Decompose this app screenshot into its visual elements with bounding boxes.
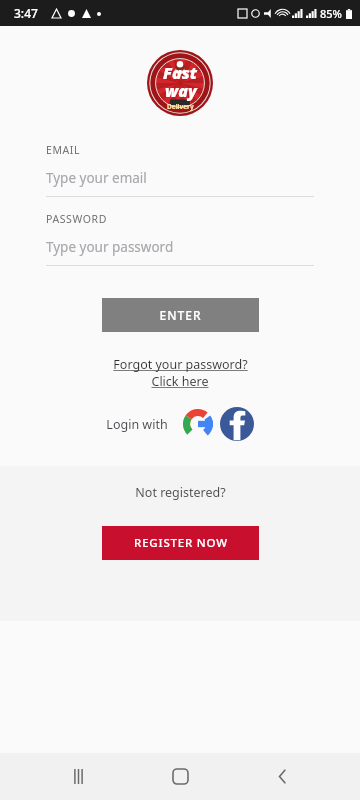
staticText: Not registered? <box>135 484 226 501</box>
staticText: REGISTER NOW <box>134 535 228 551</box>
staticText: Click here <box>151 373 209 390</box>
staticText: ENTER <box>159 307 202 323</box>
staticText: Fast <box>163 62 198 84</box>
staticText: Type your email <box>46 169 147 187</box>
staticText: Login with <box>106 416 168 433</box>
staticText: Forgot your password? <box>113 356 248 373</box>
staticText: way <box>165 80 197 102</box>
button[interactable]: Forgot your password? <box>0 356 360 390</box>
button[interactable]: Login with Facebook <box>220 407 254 441</box>
staticText: PASSWORD <box>46 212 107 226</box>
button[interactable]: PASSWORD <box>46 212 314 266</box>
button[interactable]: ENTER <box>102 298 259 332</box>
staticText: Delivery <box>167 102 194 111</box>
button[interactable]: Recent apps <box>54 753 102 800</box>
staticText: 85% <box>320 6 342 21</box>
button[interactable]: Login with Google <box>182 408 214 440</box>
staticText: 3:47 <box>14 5 38 21</box>
button[interactable]: EMAIL <box>46 143 314 197</box>
staticText: EMAIL <box>46 143 81 157</box>
button[interactable]: Home <box>156 753 204 800</box>
button[interactable]: REGISTER NOW <box>102 526 259 560</box>
button[interactable]: Back <box>258 753 306 800</box>
staticText: Type your password <box>46 238 174 256</box>
